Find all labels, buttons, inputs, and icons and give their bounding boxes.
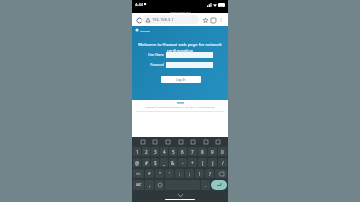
- staticText: Copyright © Huawei Technologies Co., Ltd…: [137, 106, 223, 109]
- button[interactable]: Backspace: [215, 169, 227, 178]
- staticText: ": [159, 171, 161, 177]
- staticText: Password: [148, 63, 164, 67]
- button[interactable]: More options: [217, 16, 225, 24]
- staticText: 3: [154, 149, 157, 155]
- button[interactable]: ABC: [133, 180, 144, 190]
- button[interactable]: $: [151, 158, 159, 167]
- button[interactable]: /: [218, 158, 227, 167]
- button[interactable]: ): [208, 158, 217, 167]
- button[interactable]: Reload: [135, 16, 143, 24]
- staticText: 7: [191, 149, 194, 155]
- button[interactable]: Log In: [161, 76, 201, 83]
- staticText: =\<: [136, 172, 141, 176]
- staticText: 2: [145, 149, 148, 155]
- other: Hide keyboard: [178, 194, 183, 197]
- button[interactable]: 5: [169, 147, 177, 156]
- staticText: $: [154, 160, 157, 166]
- staticText: ): [212, 160, 214, 166]
- button[interactable]: ': [165, 169, 174, 178]
- button[interactable]: Tabs: [209, 16, 217, 24]
- staticText: +: [191, 160, 194, 166]
- button[interactable]: Enter: [211, 180, 227, 190]
- staticText: 4: [163, 149, 166, 155]
- button[interactable]: -: [178, 158, 187, 167]
- button[interactable]: :: [175, 169, 184, 178]
- staticText: !: [199, 171, 201, 177]
- staticText: ABC: [136, 183, 142, 187]
- button[interactable]: 7: [188, 147, 197, 156]
- button[interactable]: 0: [218, 147, 227, 156]
- button[interactable]: Settings: [189, 138, 196, 145]
- button[interactable]: Grid: [139, 138, 146, 145]
- button[interactable]: 6: [178, 147, 187, 156]
- staticText: /: [222, 160, 224, 166]
- staticText: -: [182, 160, 184, 166]
- button[interactable]: #: [142, 158, 150, 167]
- button[interactable]: 4: [160, 147, 168, 156]
- staticText: ': [169, 171, 171, 177]
- staticText: ,: [149, 182, 151, 188]
- button[interactable]: &: [169, 158, 177, 167]
- staticText: www.huawei.com: [170, 10, 191, 13]
- staticText: @: [135, 160, 140, 166]
- button[interactable]: ": [155, 169, 164, 178]
- button[interactable]: ?: [205, 169, 214, 178]
- staticText: 1: [136, 149, 139, 155]
- button[interactable]: *: [145, 169, 154, 178]
- staticText: ;: [189, 171, 191, 177]
- button[interactable]: 8: [198, 147, 207, 156]
- staticText: ?: [209, 171, 211, 177]
- staticText: 8: [201, 149, 204, 155]
- staticText: :: [179, 171, 181, 177]
- staticText: User Name: [148, 53, 164, 57]
- staticText: .: [205, 182, 207, 188]
- button[interactable]: Clipboard: [151, 138, 158, 145]
- button[interactable]: _: [160, 158, 168, 167]
- staticText: &: [171, 160, 175, 166]
- staticText: _: [163, 160, 165, 166]
- staticText: 192.168.3.1: [152, 17, 174, 22]
- button[interactable]: Voice: [214, 138, 221, 145]
- staticText: 4:44: [135, 2, 143, 7]
- button[interactable]: 3: [151, 147, 159, 156]
- button[interactable]: Translate: [164, 138, 171, 145]
- staticText: 6: [181, 149, 184, 155]
- staticText: 5: [172, 149, 175, 155]
- staticText: Welcome to Huawei web page for network c…: [136, 42, 224, 54]
- button[interactable]: 192.168.3.1: [143, 15, 199, 24]
- button[interactable]: !: [195, 169, 204, 178]
- staticText: #: [145, 160, 148, 166]
- button[interactable]: @: [133, 158, 141, 167]
- button[interactable]: ,: [145, 180, 154, 190]
- button[interactable]: 9: [208, 147, 217, 156]
- staticText: HUAWEI: [140, 29, 150, 32]
- button[interactable]: Bookmark: [201, 16, 209, 24]
- button[interactable]: ;: [185, 169, 194, 178]
- button[interactable]: =\<: [133, 169, 144, 178]
- staticText: 9: [211, 149, 214, 155]
- staticText: *: [148, 171, 151, 177]
- staticText: 0: [221, 149, 224, 155]
- button[interactable]: 1: [133, 147, 141, 156]
- staticText: Log In: [176, 78, 186, 82]
- staticText: 86: [220, 4, 223, 7]
- staticText: (: [202, 160, 204, 166]
- button[interactable]: 2: [142, 147, 150, 156]
- button[interactable]: .: [201, 180, 210, 190]
- button[interactable]: +: [188, 158, 197, 167]
- button[interactable]: (: [198, 158, 207, 167]
- button[interactable]: Theme: [202, 138, 209, 145]
- button[interactable]: Sticker: [177, 138, 184, 145]
- button[interactable]: Emoji: [155, 180, 164, 190]
